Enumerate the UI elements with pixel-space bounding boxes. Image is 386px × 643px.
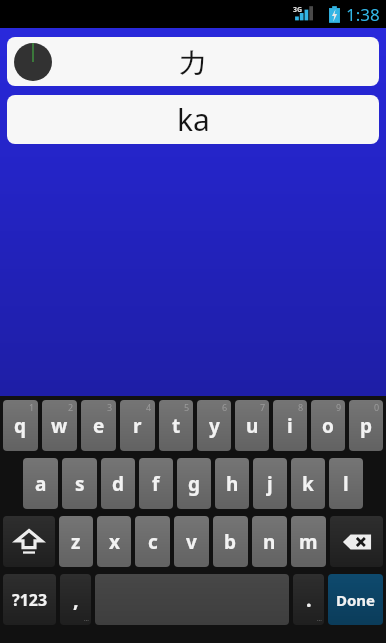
button[interactable]: Delete — [330, 516, 383, 567]
button[interactable]: j — [253, 458, 287, 509]
staticText: 9 — [336, 401, 342, 413]
button[interactable]: p — [349, 400, 383, 451]
button[interactable]: i — [273, 400, 307, 451]
staticText: y — [209, 413, 220, 439]
staticText: k — [302, 471, 314, 497]
staticText: l — [343, 471, 349, 497]
button[interactable]: d — [101, 458, 135, 509]
staticText: カ — [177, 42, 209, 81]
button[interactable]: w — [42, 400, 77, 451]
staticText: i — [287, 413, 293, 439]
button[interactable]: l — [329, 458, 363, 509]
button[interactable] — [95, 574, 289, 625]
staticText: n — [263, 529, 276, 555]
button[interactable]: r — [120, 400, 155, 451]
button[interactable]: b — [213, 516, 248, 567]
staticText: z — [71, 529, 81, 555]
staticText: ··· — [317, 616, 322, 624]
staticText: s — [75, 471, 85, 497]
staticText: v — [186, 529, 197, 555]
button[interactable]: m — [291, 516, 326, 567]
button[interactable]: Shift — [3, 516, 55, 567]
button[interactable]: y — [197, 400, 231, 451]
staticText: d — [112, 471, 125, 497]
staticText: 6 — [222, 401, 228, 413]
staticText: 3G — [293, 5, 303, 15]
staticText: t — [172, 413, 181, 439]
button[interactable]: u — [235, 400, 269, 451]
staticText: u — [246, 413, 259, 439]
staticText: j — [267, 471, 273, 497]
staticText: a — [35, 471, 47, 497]
button[interactable]: o — [311, 400, 345, 451]
button[interactable]: ?123 — [3, 574, 56, 625]
staticText: 1 — [29, 401, 35, 413]
staticText: 8 — [298, 401, 304, 413]
button[interactable]: t — [159, 400, 193, 451]
staticText: b — [224, 529, 237, 555]
staticText: ··· — [84, 616, 89, 624]
staticText: h — [226, 471, 239, 497]
staticText: p — [360, 413, 373, 439]
button[interactable]: h — [215, 458, 249, 509]
button[interactable]: カ — [7, 37, 379, 86]
staticText: x — [109, 529, 120, 555]
button[interactable]: k — [291, 458, 325, 509]
staticText: ka — [177, 99, 210, 140]
button[interactable]: . — [293, 574, 324, 625]
button[interactable]: q — [3, 400, 38, 451]
staticText: , — [73, 586, 79, 613]
staticText: 2 — [68, 401, 74, 413]
staticText: r — [133, 413, 142, 439]
button[interactable]: z — [59, 516, 93, 567]
staticText: ?123 — [12, 589, 48, 611]
button[interactable]: e — [81, 400, 116, 451]
button[interactable]: ka — [7, 95, 379, 144]
staticText: o — [322, 413, 334, 439]
button[interactable]: g — [177, 458, 211, 509]
staticText: m — [299, 529, 318, 555]
staticText: Done — [336, 590, 376, 610]
button[interactable]: x — [97, 516, 131, 567]
staticText: g — [188, 471, 201, 497]
staticText: 3 — [107, 401, 113, 413]
button[interactable]: v — [174, 516, 209, 567]
staticText: 0 — [374, 401, 380, 413]
button[interactable]: s — [62, 458, 97, 509]
button[interactable]: n — [252, 516, 287, 567]
button[interactable]: Done — [328, 574, 383, 625]
staticText: e — [93, 413, 105, 439]
staticText: c — [148, 529, 158, 555]
staticText: 4 — [146, 401, 152, 413]
staticText: 5 — [184, 401, 190, 413]
staticText: w — [51, 413, 68, 439]
button[interactable]: , — [60, 574, 91, 625]
button[interactable]: a — [23, 458, 58, 509]
button[interactable]: f — [139, 458, 173, 509]
staticText: 7 — [260, 401, 266, 413]
staticText: f — [152, 471, 160, 497]
staticText: 1:38 — [346, 3, 380, 26]
staticText: q — [14, 413, 27, 439]
staticText: . — [306, 586, 312, 613]
button[interactable]: c — [135, 516, 170, 567]
